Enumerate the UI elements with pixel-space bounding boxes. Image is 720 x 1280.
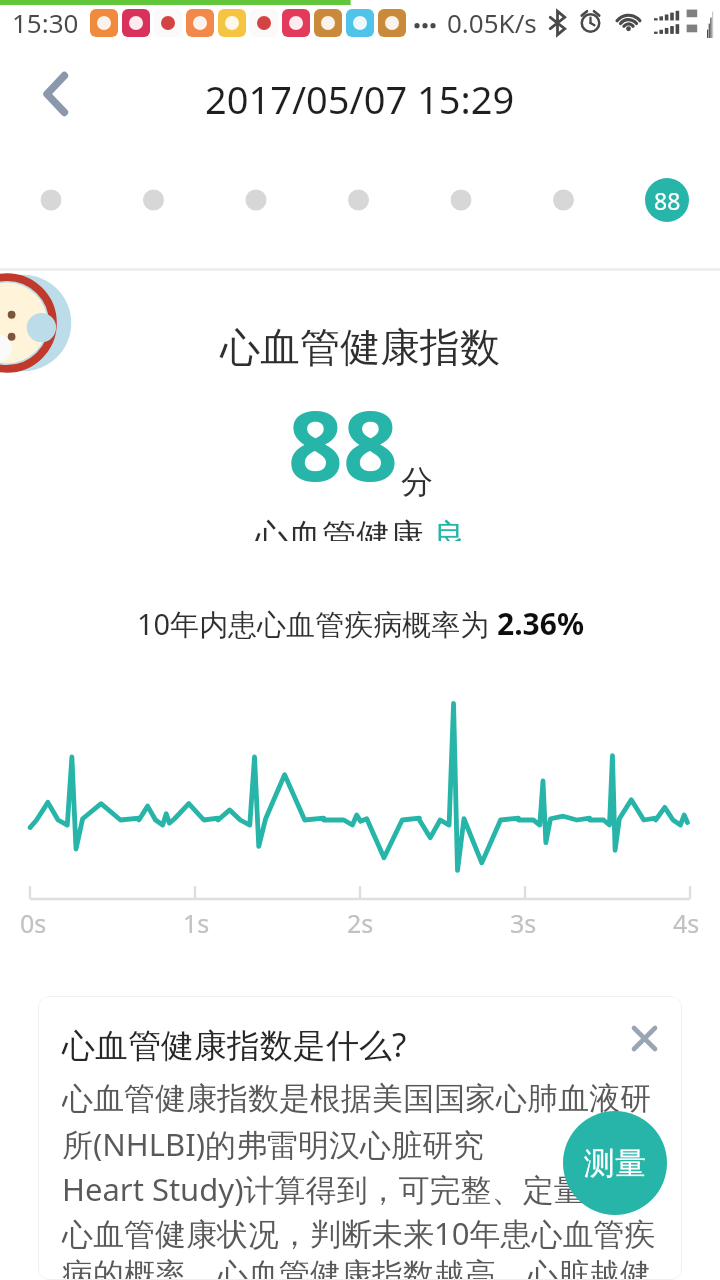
staticText: 心血管健康指数是什么? — [62, 1022, 407, 1067]
staticText: 心血管健康指数 — [220, 322, 500, 372]
staticText: 15:30 — [12, 5, 79, 40]
staticText: 测量 — [584, 1144, 646, 1183]
staticText: 1s — [183, 906, 210, 940]
staticText: 0s — [20, 906, 47, 940]
staticText: 10年内患心血管疾病概率为 — [137, 604, 490, 644]
staticText: 88 — [288, 378, 398, 509]
staticText: 4s — [673, 906, 700, 940]
staticText: 良 — [433, 515, 467, 541]
staticText: 心血管健康指数是根据美国国家心肺血液研究 — [62, 1079, 664, 1123]
staticText: 心血管健康状况，判断未来10年患心血管疾 — [62, 1212, 656, 1254]
button[interactable]: 测量 — [563, 1111, 667, 1215]
staticText: Heart Study)计算得到，可完整、定量评估 — [62, 1168, 647, 1210]
staticText: 2s — [347, 906, 374, 940]
staticText: 2.36% — [497, 603, 584, 644]
button[interactable]: Close — [621, 1015, 667, 1061]
button[interactable]: 心血管健康指数是什么? — [38, 996, 682, 1280]
staticText: 分 — [401, 462, 433, 502]
staticText: 0.05K/s — [447, 5, 537, 40]
staticText: 心血管健康 — [254, 515, 424, 541]
staticText: 3s — [510, 906, 537, 940]
button[interactable]: 88 — [645, 178, 689, 222]
staticText: 所(NHLBI)的弗雷明汉心脏研究(Framingham — [62, 1123, 664, 1167]
staticText: 病的概率。心血管健康指数越高，心脏越健 — [62, 1255, 651, 1280]
staticText: 2017/05/07 15:29 — [205, 73, 515, 125]
staticText: 88 — [654, 185, 681, 216]
button[interactable]: Back — [22, 60, 90, 128]
